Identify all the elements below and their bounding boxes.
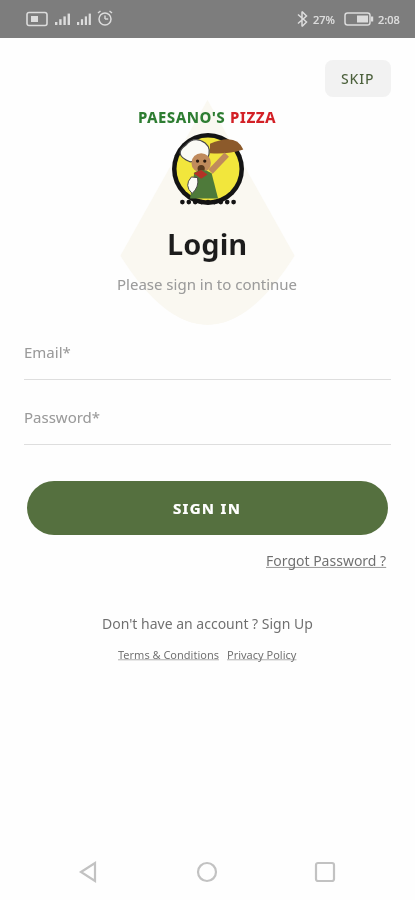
staticText: Login xyxy=(167,224,248,263)
button[interactable]: Privacy Policy xyxy=(223,645,301,664)
staticText: SIGN IN xyxy=(173,498,242,518)
staticText: Password* xyxy=(24,407,101,427)
staticText: PIZZA xyxy=(230,107,277,127)
button[interactable]: Recent apps xyxy=(297,844,353,900)
staticText: Terms & Conditions xyxy=(118,647,219,662)
button[interactable]: SIGN IN xyxy=(27,481,388,535)
button[interactable]: Password* xyxy=(24,407,391,445)
staticText: Forgot Password ? xyxy=(266,551,387,570)
staticText: 2:08 xyxy=(378,12,400,27)
staticText: PAESANO'S xyxy=(138,107,230,127)
button[interactable]: SKIP xyxy=(325,60,391,97)
staticText: Don't have an account ? Sign Up xyxy=(102,614,313,633)
staticText: 27% xyxy=(313,12,335,27)
button[interactable]: Home xyxy=(179,844,235,900)
button[interactable]: Forgot Password ? xyxy=(262,547,391,574)
staticText: Privacy Policy xyxy=(227,647,297,662)
button[interactable]: Terms & Conditions xyxy=(114,645,223,664)
button[interactable]: Don't have an account ? Sign Up xyxy=(98,610,317,637)
staticText: Please sign in to continue xyxy=(117,274,298,294)
staticText: SKIP xyxy=(341,69,375,88)
staticText: Email* xyxy=(24,342,71,362)
button[interactable]: Email* xyxy=(24,342,391,380)
other: Paesano's Pizza logo xyxy=(169,130,247,208)
button[interactable]: Back xyxy=(61,844,117,900)
